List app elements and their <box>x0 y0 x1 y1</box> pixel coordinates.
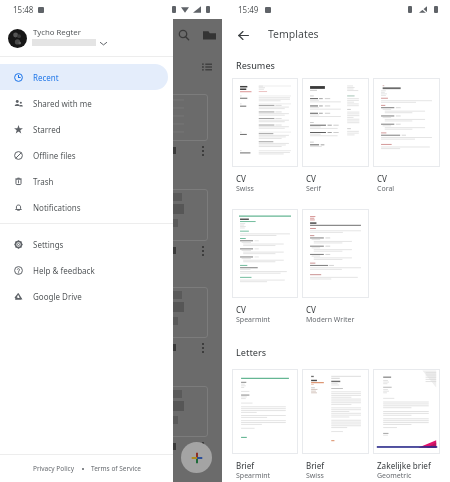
staticText: Coral <box>377 184 395 194</box>
button[interactable]: Shared with me <box>0 90 168 116</box>
button[interactable]: Trash <box>0 168 168 194</box>
button[interactable]: New <box>181 442 212 473</box>
button[interactable]: CV <box>302 78 369 194</box>
staticText: 15:49 <box>238 4 259 15</box>
button[interactable]: Notifications <box>0 194 168 220</box>
button[interactable]: Terms of Service <box>91 464 141 473</box>
staticText: Shared with me <box>33 98 92 109</box>
button[interactable]: Help & feedback <box>0 257 168 283</box>
button[interactable]: Recent <box>0 64 168 90</box>
button[interactable]: Brief <box>232 369 298 481</box>
staticText: Privacy Policy <box>33 464 75 473</box>
button[interactable]: Offline files <box>0 142 168 168</box>
button[interactable]: Google Drive <box>0 283 168 309</box>
staticText: Geometric <box>377 471 412 481</box>
button[interactable]: CV <box>373 78 440 194</box>
staticText: 15:48 <box>13 4 34 15</box>
button[interactable]: CV <box>232 209 298 325</box>
staticText: CV <box>236 304 246 315</box>
staticText: Spearmint <box>236 471 271 481</box>
staticText: Brief <box>306 460 325 471</box>
staticText: Trash <box>33 176 54 187</box>
staticText: Swiss <box>236 184 254 194</box>
staticText: CV <box>306 173 316 184</box>
staticText: Google Drive <box>33 291 82 302</box>
staticText: Settings <box>33 239 64 250</box>
staticText: Zakelijke brief <box>377 460 431 471</box>
button[interactable]: Settings <box>0 231 168 257</box>
staticText: Spearmint <box>236 315 271 325</box>
staticText: Starred <box>33 124 61 135</box>
staticText: Resumes <box>236 59 275 71</box>
staticText: Notifications <box>33 202 81 213</box>
staticText: Letters <box>236 346 267 358</box>
staticText: Tycho Regter <box>33 27 81 38</box>
button[interactable]: Privacy Policy <box>33 464 75 473</box>
button[interactable]: CV <box>232 78 298 194</box>
button[interactable]: Switch account <box>96 36 110 50</box>
button[interactable]: Brief <box>302 369 369 481</box>
button[interactable]: Starred <box>0 116 168 142</box>
staticText: CV <box>377 173 387 184</box>
staticText: Help & feedback <box>33 265 95 276</box>
button[interactable]: Back <box>234 26 252 44</box>
button[interactable]: Zakelijke brief <box>373 369 440 481</box>
staticText: CV <box>306 304 316 315</box>
staticText: Templates <box>268 27 319 41</box>
staticText: CV <box>236 173 246 184</box>
staticText: Modern Writer <box>306 315 355 325</box>
staticText: Recent <box>33 72 59 83</box>
staticText: Offline files <box>33 150 76 161</box>
staticText: Brief <box>236 460 255 471</box>
staticText: Swiss <box>306 471 324 481</box>
staticText: Terms of Service <box>91 464 141 473</box>
staticText: Serif <box>306 184 321 194</box>
button[interactable]: CV <box>302 209 369 325</box>
